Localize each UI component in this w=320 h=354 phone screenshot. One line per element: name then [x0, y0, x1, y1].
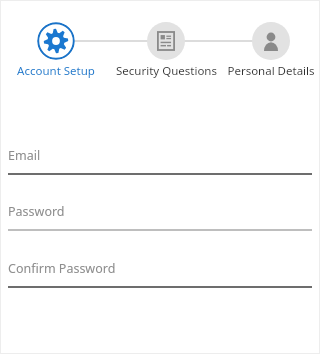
staticText: Account Setup: [17, 63, 95, 79]
staticText: Confirm Password: [8, 260, 116, 277]
staticText: Personal Details: [227, 63, 315, 79]
button[interactable]: Account Setup step: [6, 22, 106, 79]
button[interactable]: Security Questions step: [110, 22, 222, 79]
other: Account Setup step: [37, 22, 75, 60]
staticText: Password: [8, 203, 65, 220]
button[interactable]: Email: [8, 147, 312, 175]
button[interactable]: Confirm Password: [8, 260, 312, 288]
button[interactable]: Password: [8, 203, 312, 231]
staticText: Security Questions: [116, 63, 217, 79]
other: Personal Details step: [252, 22, 290, 60]
other: Security Questions step: [147, 22, 185, 60]
button[interactable]: Personal Details step: [222, 22, 320, 79]
staticText: Email: [8, 147, 41, 164]
